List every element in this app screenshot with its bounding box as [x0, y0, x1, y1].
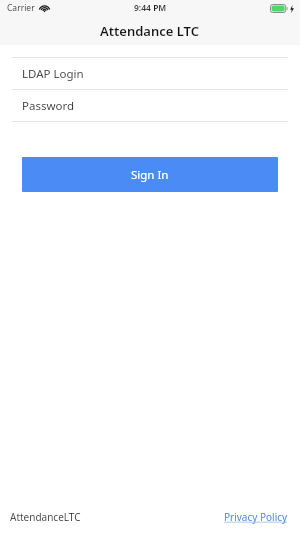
staticText: LDAP Login: [22, 66, 84, 82]
staticText: Attendance LTC: [100, 22, 200, 40]
staticText: Carrier: [7, 2, 35, 14]
staticText: AttendanceLTC: [10, 510, 81, 524]
button[interactable]: LDAP Login: [0, 58, 300, 89]
button[interactable]: Password: [0, 90, 300, 121]
button[interactable]: Sign In: [22, 157, 278, 192]
button[interactable]: Privacy Policy: [224, 510, 288, 524]
staticText: Sign In: [131, 167, 169, 183]
staticText: Password: [22, 98, 75, 114]
staticText: Privacy Policy: [224, 510, 288, 524]
staticText: 9:44 PM: [134, 2, 167, 14]
